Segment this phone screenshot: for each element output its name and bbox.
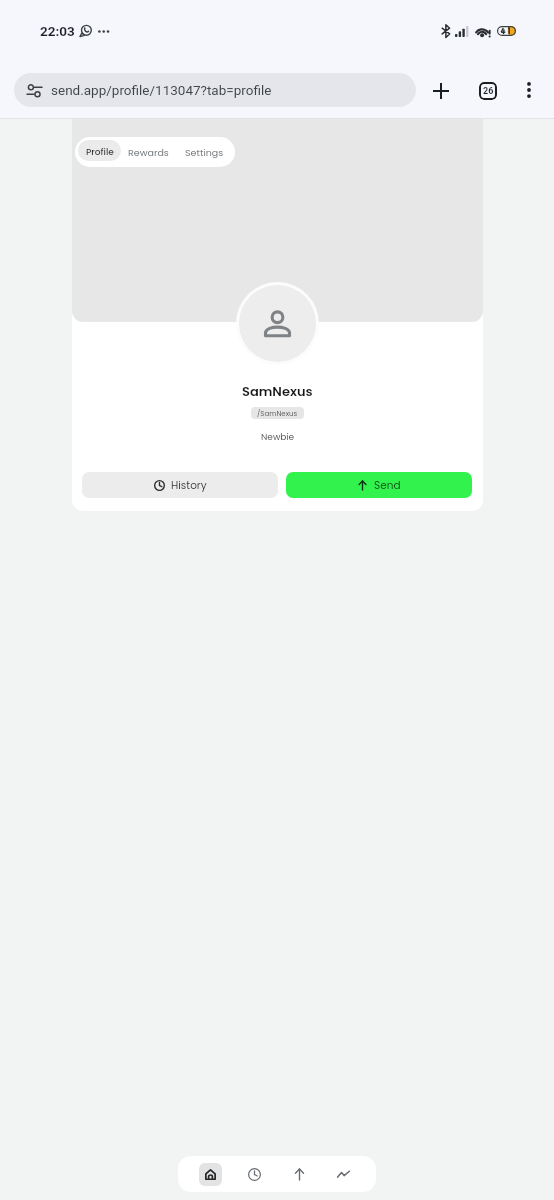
staticText: Profile <box>86 146 114 159</box>
staticText: Send <box>374 478 401 493</box>
button[interactable]: send.app/profile/113047?tab=profile <box>14 73 416 107</box>
staticText: Rewards <box>128 146 169 159</box>
staticText: Newbie <box>261 431 295 444</box>
staticText: SamNexus <box>242 382 313 400</box>
button[interactable]: Profile <box>78 140 121 161</box>
staticText: History <box>171 478 207 493</box>
button[interactable]: Rewards <box>126 137 171 167</box>
button[interactable]: Settings <box>182 137 227 167</box>
staticText: 22:03 <box>40 23 75 39</box>
button[interactable]: Home <box>199 1163 222 1186</box>
button[interactable]: Activity <box>332 1163 355 1186</box>
staticText: 26 <box>483 86 494 97</box>
button[interactable]: History <box>243 1163 266 1186</box>
staticText: /SamNexus <box>257 409 298 419</box>
button[interactable]: Send <box>288 1163 311 1186</box>
button[interactable]: More options <box>512 73 546 107</box>
button[interactable]: Switch or close tabs <box>470 73 505 108</box>
button[interactable]: Send <box>286 472 472 498</box>
button[interactable]: History <box>82 472 278 498</box>
staticText: send.app/profile/113047?tab=profile <box>51 82 272 98</box>
staticText: Settings <box>185 146 224 159</box>
button[interactable]: New tab <box>423 73 458 108</box>
